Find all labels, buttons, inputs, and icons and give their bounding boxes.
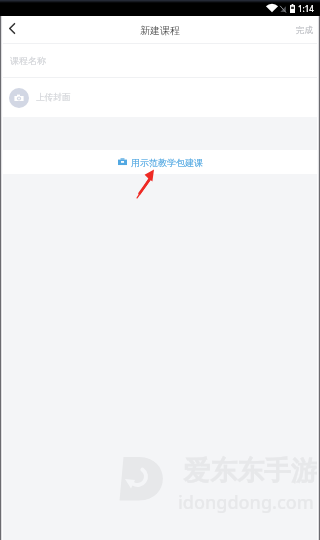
button[interactable]: 用示范教学包建课: [0, 150, 320, 174]
button[interactable]: Back: [0, 16, 24, 40]
button[interactable]: 完成: [289, 16, 320, 44]
staticText: idongdong.com: [178, 490, 314, 515]
staticText: 爱东东手游: [183, 454, 318, 488]
staticText: 新建课程: [140, 24, 180, 37]
staticText: 上传封面: [36, 92, 71, 103]
staticText: 课程名称: [10, 55, 46, 66]
button[interactable]: 上传封面: [0, 78, 320, 117]
staticText: 1:14: [298, 3, 314, 14]
button[interactable]: 课程名称: [0, 44, 320, 77]
staticText: 用示范教学包建课: [131, 157, 203, 168]
staticText: 完成: [296, 25, 313, 36]
